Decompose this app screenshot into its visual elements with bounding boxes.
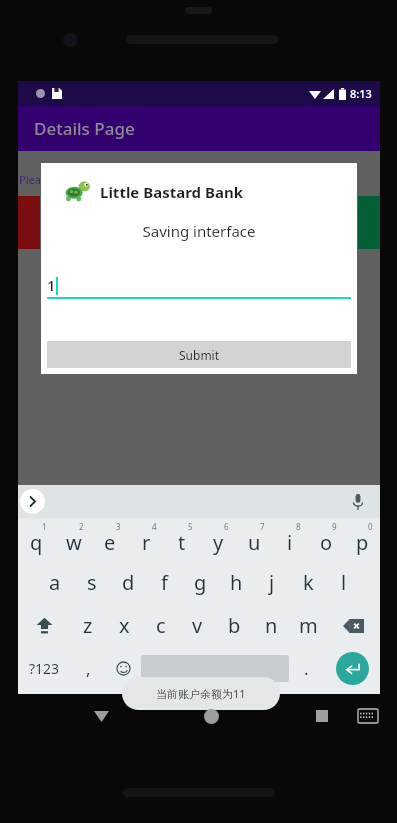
staticText: 1 xyxy=(47,275,56,295)
staticText: t xyxy=(178,529,186,556)
staticText: 7 xyxy=(260,521,265,532)
button[interactable]: Voice input xyxy=(345,489,371,515)
button[interactable]: 3 xyxy=(92,518,128,561)
staticText: x xyxy=(119,612,130,639)
staticText: o xyxy=(320,529,333,556)
button[interactable]: 6 xyxy=(200,518,236,561)
staticText: w xyxy=(66,529,82,556)
button[interactable]: Space xyxy=(141,655,289,682)
button[interactable]: a xyxy=(36,561,73,604)
staticText: d xyxy=(122,569,135,596)
button[interactable]: l xyxy=(326,561,362,604)
staticText: 5 xyxy=(188,521,193,532)
staticText: v xyxy=(192,612,203,639)
staticText: 3 xyxy=(116,521,121,532)
staticText: h xyxy=(230,569,243,596)
staticText: 0 xyxy=(368,521,373,532)
staticText: 当前账户余额为11 xyxy=(156,686,246,701)
staticText: . xyxy=(304,657,309,680)
button[interactable]: 5 xyxy=(164,518,200,561)
button[interactable]: Shift xyxy=(18,604,70,647)
button[interactable]: . xyxy=(289,647,324,690)
staticText: m xyxy=(299,612,318,639)
staticText: 6 xyxy=(224,521,229,532)
button[interactable]: Details Page xyxy=(18,106,380,151)
staticText: Please xyxy=(19,172,53,187)
staticText: Little Bastard Bank xyxy=(100,182,243,202)
button[interactable]: Recents xyxy=(307,701,337,731)
staticText: k xyxy=(303,569,314,596)
button[interactable]: 1 xyxy=(18,518,55,561)
staticText: Saving interface xyxy=(41,221,357,241)
staticText: ?123 xyxy=(29,659,60,678)
button[interactable]: v xyxy=(179,604,216,647)
button[interactable]: 8 xyxy=(272,518,308,561)
button[interactable]: Home xyxy=(196,701,226,731)
staticText: b xyxy=(228,612,241,639)
button[interactable]: m xyxy=(290,604,327,647)
button[interactable]: d xyxy=(110,561,146,604)
button[interactable]: Back xyxy=(86,701,116,731)
staticText: z xyxy=(83,612,93,639)
button[interactable]: Enter xyxy=(336,652,369,685)
staticText: 8 xyxy=(296,521,301,532)
staticText: s xyxy=(87,569,97,596)
staticText: g xyxy=(194,569,207,596)
button[interactable]: 7 xyxy=(236,518,272,561)
staticText: 1 xyxy=(42,521,47,532)
button[interactable]: k xyxy=(290,561,326,604)
button[interactable]: ?123 xyxy=(18,647,71,690)
staticText: Submit xyxy=(179,347,220,363)
staticText: 8:13 xyxy=(350,86,372,101)
staticText: n xyxy=(265,612,278,639)
button[interactable]: 9 xyxy=(308,518,344,561)
button[interactable]: c xyxy=(142,604,179,647)
button[interactable]: 2 xyxy=(55,518,92,561)
staticText: r xyxy=(142,529,151,556)
button[interactable]: n xyxy=(253,604,290,647)
button[interactable]: Emoji xyxy=(106,647,141,690)
staticText: 4 xyxy=(152,521,157,532)
staticText: j xyxy=(269,569,275,596)
staticText: p xyxy=(356,529,369,556)
button[interactable]: Switch keyboard xyxy=(353,701,383,731)
staticText: i xyxy=(287,529,293,556)
button[interactable]: g xyxy=(182,561,218,604)
button[interactable]: Backspace xyxy=(327,604,380,647)
staticText: 2 xyxy=(79,521,84,532)
button[interactable]: s xyxy=(73,561,110,604)
button[interactable]: z xyxy=(70,604,106,647)
staticText: 9 xyxy=(332,521,337,532)
staticText: a xyxy=(49,569,61,596)
staticText: c xyxy=(156,612,166,639)
button[interactable]: , xyxy=(71,647,106,690)
button[interactable]: j xyxy=(254,561,290,604)
button[interactable]: h xyxy=(218,561,254,604)
button[interactable]: x xyxy=(106,604,142,647)
button[interactable]: Submit xyxy=(47,341,351,368)
staticText: u xyxy=(248,529,261,556)
staticText: y xyxy=(213,529,224,556)
staticText: , xyxy=(86,657,91,680)
staticText: q xyxy=(30,529,43,556)
button[interactable]: b xyxy=(216,604,253,647)
staticText: f xyxy=(161,569,168,596)
staticText: l xyxy=(341,569,347,596)
button[interactable]: f xyxy=(146,561,182,604)
button[interactable]: 0 xyxy=(344,518,380,561)
staticText: Details Page xyxy=(34,117,135,140)
staticText: e xyxy=(104,529,116,556)
button[interactable]: 4 xyxy=(128,518,164,561)
button[interactable]: Expand suggestions xyxy=(20,489,45,514)
